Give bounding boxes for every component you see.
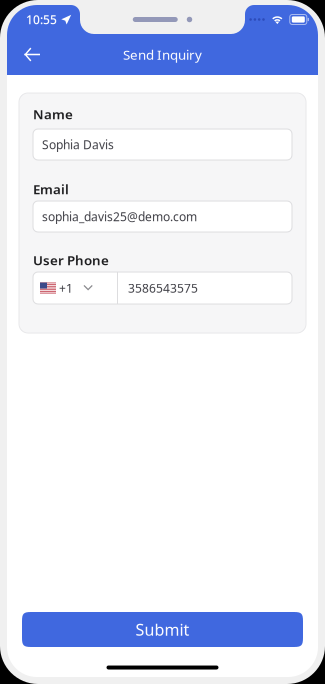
button[interactable]: +1 bbox=[33, 272, 292, 304]
staticText: 3586543575 bbox=[128, 280, 198, 296]
button[interactable]: Back bbox=[15, 37, 49, 71]
staticText: Email bbox=[33, 180, 69, 198]
button[interactable]: Submit bbox=[22, 612, 303, 647]
staticText: Name bbox=[33, 105, 73, 123]
staticText: Send Inquiry bbox=[123, 46, 202, 63]
staticText: sophia_davis25@demo.com bbox=[42, 208, 197, 224]
staticText: +1 bbox=[59, 280, 73, 296]
staticText: Submit bbox=[135, 619, 189, 640]
staticText: 10:55 bbox=[26, 11, 57, 27]
staticText: User Phone bbox=[33, 251, 109, 269]
staticText: Sophia Davis bbox=[42, 136, 114, 152]
button[interactable]: sophia_davis25@demo.com bbox=[33, 201, 292, 232]
button[interactable]: Sophia Davis bbox=[33, 129, 292, 160]
